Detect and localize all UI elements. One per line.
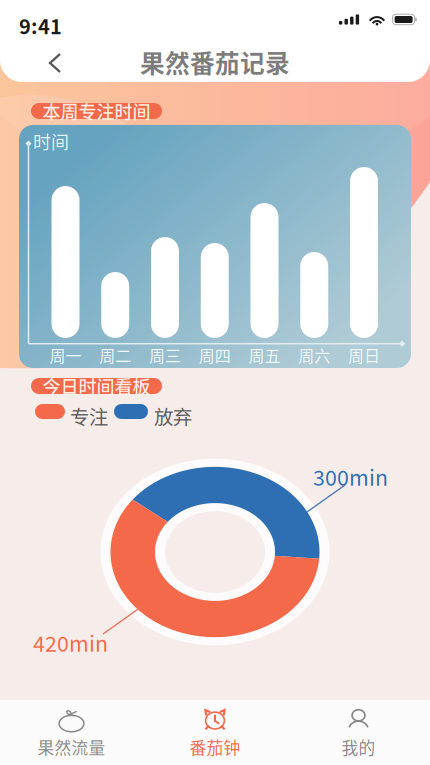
button[interactable]: 我的 — [287, 700, 430, 765]
staticText: 我的 — [341, 735, 375, 759]
staticText: 周四 — [199, 343, 231, 367]
staticText: 周二 — [99, 343, 131, 367]
staticText: 本周专注时间 — [42, 98, 150, 124]
staticText: 番茄钟 — [189, 735, 240, 759]
staticText: 周六 — [298, 343, 330, 367]
staticText: 周日 — [348, 343, 380, 367]
button[interactable]: 番茄钟 — [143, 700, 287, 765]
button[interactable]: Back — [33, 43, 77, 83]
staticText: 今日时间看板 — [42, 373, 150, 399]
staticText: 放弃 — [154, 402, 192, 430]
staticText: 周五 — [248, 343, 280, 367]
staticText: 周三 — [149, 343, 181, 367]
staticText: 420min — [33, 627, 108, 658]
staticText: 300min — [313, 461, 388, 492]
staticText: 果然流量 — [37, 735, 105, 759]
staticText: 专注 — [70, 402, 108, 430]
button[interactable]: 果然流量 — [0, 700, 143, 765]
staticText: 周一 — [49, 343, 81, 367]
staticText: 果然番茄记录 — [140, 44, 290, 80]
staticText: 9:41 — [19, 11, 62, 40]
staticText: 时间 — [33, 128, 69, 154]
